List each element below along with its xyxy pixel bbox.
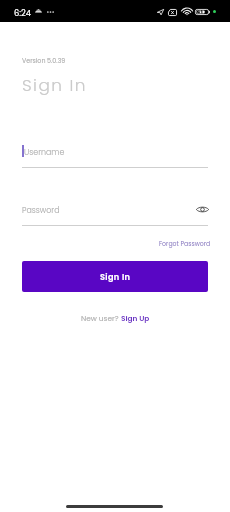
button[interactable]: Forgot Password — [159, 239, 211, 248]
button[interactable]: Show password — [192, 199, 212, 219]
button[interactable]: Sign Up — [121, 313, 150, 323]
staticText: Version 5.0.39 — [22, 56, 66, 65]
staticText: 6:24 — [14, 7, 32, 19]
staticText: Forgot Password — [159, 239, 211, 248]
button[interactable]: Sign In — [22, 261, 208, 292]
staticText: Sign In — [100, 271, 131, 282]
staticText: Username — [24, 147, 65, 158]
staticText: New user? — [81, 313, 121, 323]
staticText: Sign In — [22, 73, 87, 97]
staticText: Password — [22, 205, 60, 216]
